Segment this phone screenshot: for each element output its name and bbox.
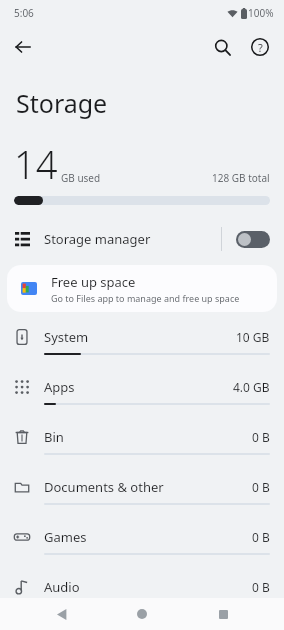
staticText: 10 GB (236, 329, 270, 345)
button[interactable]: System (0, 320, 284, 370)
button[interactable]: Home (123, 598, 161, 630)
staticText: 0 B (252, 529, 270, 545)
staticText: 0 B (252, 479, 270, 495)
button[interactable]: Storage manager toggle (236, 231, 270, 248)
staticText: Apps (44, 378, 75, 396)
staticText: 5:06 (14, 6, 34, 20)
button[interactable]: Documents & other (0, 470, 284, 520)
staticText: 128 GB total (212, 171, 270, 185)
staticText: 0 B (252, 429, 270, 445)
button[interactable]: Recents (204, 598, 242, 630)
button[interactable]: Games (0, 520, 284, 570)
staticText: 14 (14, 138, 58, 190)
staticText: Games (44, 528, 87, 546)
button[interactable]: Free up space (7, 265, 277, 312)
staticText: System (44, 328, 89, 346)
staticText: Go to Files app to manage and free up sp… (51, 292, 240, 304)
staticText: 4.0 GB (233, 379, 270, 395)
staticText: ? (258, 40, 263, 55)
staticText: Bin (44, 428, 64, 446)
button[interactable]: Audio (0, 570, 284, 603)
button[interactable]: Bin (0, 420, 284, 470)
staticText: Storage (16, 86, 108, 120)
button[interactable]: Back (7, 31, 39, 63)
staticText: Documents & other (44, 478, 164, 496)
staticText: 0 B (252, 579, 270, 595)
staticText: Audio (44, 578, 80, 596)
button[interactable]: Apps (0, 370, 284, 420)
staticText: Storage manager (44, 230, 151, 248)
button[interactable]: Help (244, 31, 276, 63)
staticText: 100% (248, 6, 274, 20)
button[interactable]: Search (206, 31, 238, 63)
staticText: Free up space (51, 273, 136, 291)
button[interactable]: Storage manager (0, 219, 284, 259)
button[interactable]: Back (43, 598, 81, 630)
staticText: GB used (61, 171, 101, 185)
